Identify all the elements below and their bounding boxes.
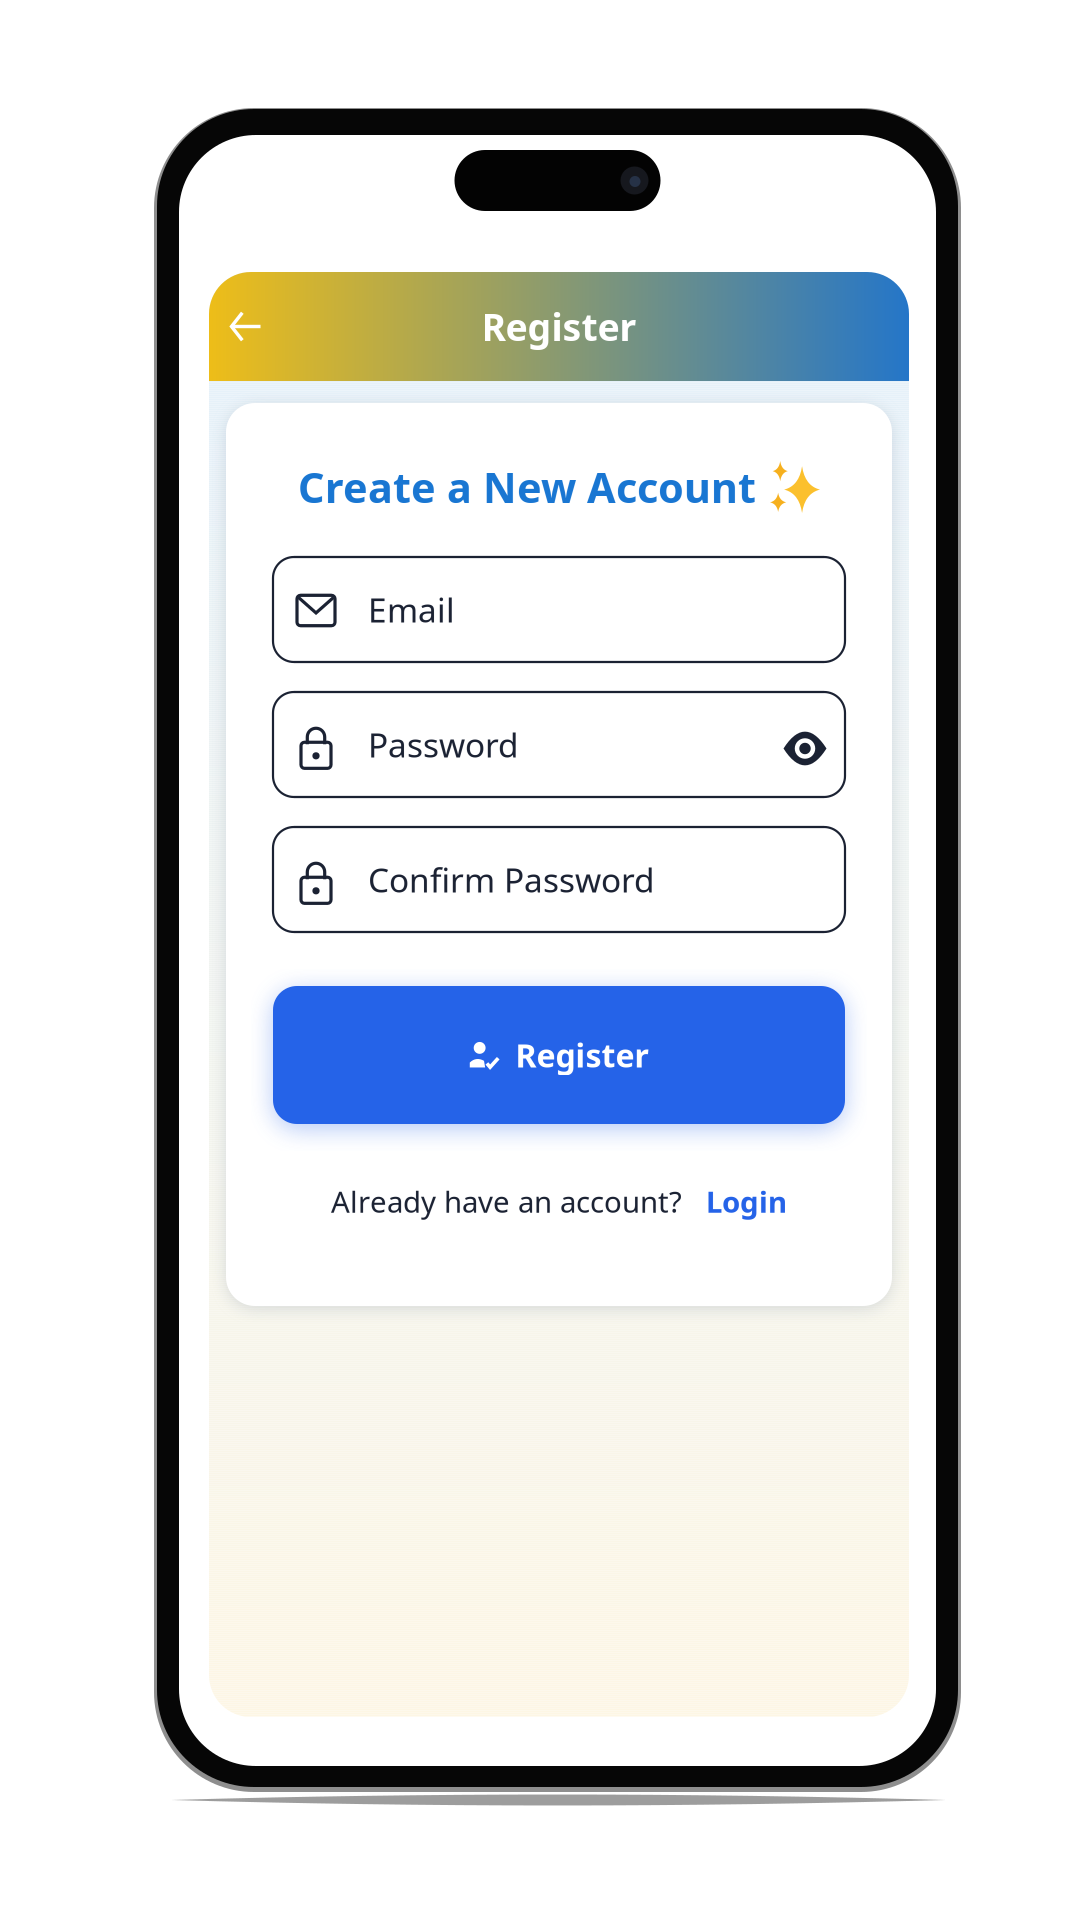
staticText: Create a New Account xyxy=(298,460,756,514)
staticText: Already have an account? xyxy=(331,1182,682,1221)
button[interactable]: Show password xyxy=(777,716,833,772)
staticText: Confirm Password xyxy=(368,857,655,902)
staticText: Password xyxy=(368,722,519,767)
staticText: Email xyxy=(368,587,455,632)
staticText: Login xyxy=(706,1182,787,1221)
staticText: Register xyxy=(515,1034,648,1076)
button[interactable]: Register xyxy=(273,986,845,1124)
button[interactable]: Back xyxy=(209,272,282,381)
staticText: Register xyxy=(481,302,636,351)
button[interactable]: Login xyxy=(706,1182,787,1221)
